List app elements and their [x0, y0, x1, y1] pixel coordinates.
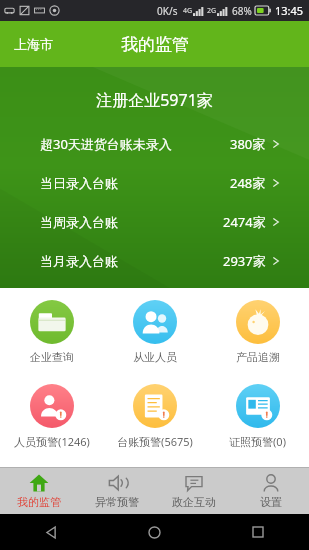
staticText: 超30天进货台账未录入 [40, 135, 172, 153]
button[interactable]: 人员预警(1246) [0, 378, 103, 455]
button[interactable]: 企业查询 [0, 294, 103, 370]
button[interactable]: 政企互动 [155, 468, 232, 514]
staticText: 注册企业5971家 [0, 89, 309, 111]
button[interactable]: 我的监管 [0, 468, 78, 514]
staticText: 上海市 [14, 36, 53, 52]
staticText: 异常预警 [95, 495, 139, 509]
staticText: 2G [207, 6, 217, 16]
staticText: 我的监管 [17, 495, 61, 509]
button[interactable]: 证照预警(0) [206, 378, 309, 455]
staticText: 政企互动 [172, 495, 216, 509]
staticText: 13:45 [275, 3, 304, 18]
staticText: 248家 [230, 174, 266, 192]
staticText: 当月录入台账 [40, 253, 118, 269]
staticText: 台账预警(5675) [117, 434, 193, 449]
button[interactable]: 产品追溯 [206, 294, 309, 370]
staticText: 证照预警(0) [229, 434, 286, 449]
staticText: 设置 [260, 495, 282, 509]
button[interactable]: 异常预警 [78, 468, 155, 514]
staticText: 2474家 [223, 213, 266, 231]
button[interactable]: 台账预警(5675) [103, 378, 206, 455]
button[interactable]: Recents [244, 518, 272, 546]
staticText: 从业人员 [133, 350, 177, 364]
button[interactable]: Back [37, 518, 66, 547]
button[interactable]: 当周录入台账 [0, 205, 309, 239]
button[interactable]: 当月录入台账 [0, 244, 309, 278]
button[interactable]: 设置 [232, 468, 309, 514]
staticText: 380家 [230, 135, 266, 153]
staticText: 当日录入台账 [40, 175, 118, 191]
staticText: 68% [232, 4, 252, 18]
button[interactable]: 当日录入台账 [0, 166, 309, 200]
staticText: 4G [183, 6, 193, 16]
staticText: 我的监管 [121, 34, 189, 55]
staticText: 企业查询 [30, 350, 74, 364]
button[interactable]: 超30天进货台账未录入 [0, 127, 309, 161]
staticText: 2937家 [223, 252, 266, 270]
staticText: 产品追溯 [236, 350, 280, 364]
staticText: 人员预警(1246) [14, 434, 90, 449]
staticText: 0K/s [157, 4, 178, 18]
button[interactable]: Home [140, 518, 169, 547]
staticText: 当周录入台账 [40, 214, 118, 230]
button[interactable]: 上海市 [0, 28, 67, 60]
button[interactable]: 从业人员 [103, 294, 206, 370]
